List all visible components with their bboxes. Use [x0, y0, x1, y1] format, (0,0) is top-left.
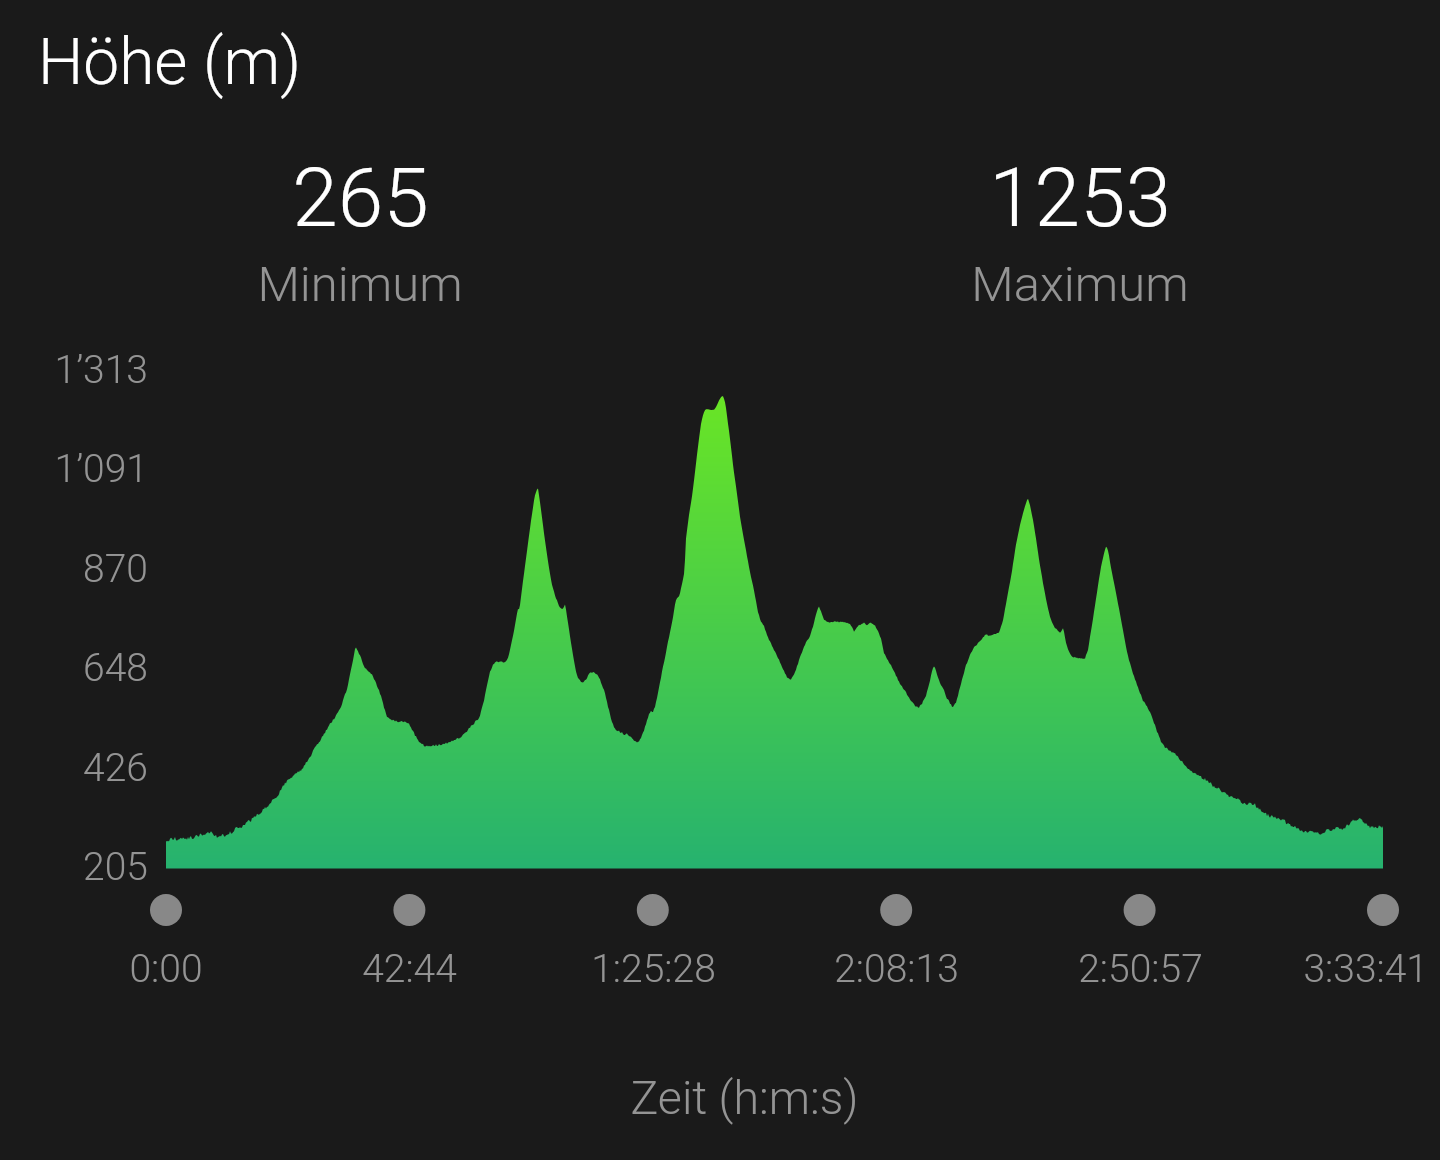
staticText: 265: [292, 150, 429, 246]
other: Elevation profile chart: [0, 0, 1440, 1160]
staticText: 42:44: [362, 946, 457, 992]
staticText: 1253: [989, 150, 1171, 246]
staticText: 1:25:28: [591, 946, 716, 992]
staticText: 1’091: [54, 446, 148, 492]
staticText: Maximum: [971, 256, 1189, 313]
staticText: 870: [83, 546, 148, 592]
staticText: Minimum: [257, 256, 463, 313]
staticText: 426: [83, 745, 148, 791]
staticText: 2:08:13: [834, 946, 959, 992]
staticText: Zeit (h:m:s): [630, 1071, 859, 1125]
staticText: 0:00: [129, 946, 203, 992]
staticText: 1’313: [54, 347, 148, 393]
staticText: 648: [83, 645, 148, 691]
staticText: 205: [83, 844, 148, 890]
staticText: 3:33:41: [1303, 946, 1428, 992]
staticText: Höhe (m): [38, 25, 302, 100]
staticText: 2:50:57: [1078, 946, 1203, 992]
